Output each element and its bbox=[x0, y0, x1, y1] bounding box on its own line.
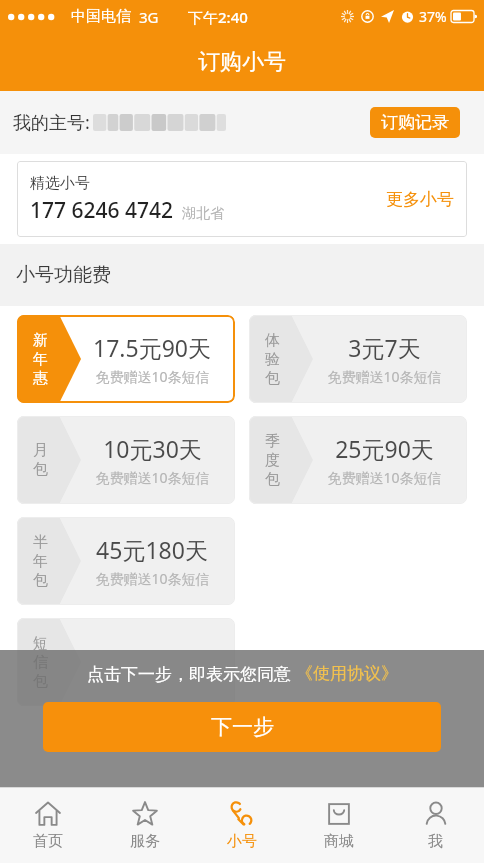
staticText: 小号功能费 bbox=[16, 263, 111, 287]
staticText: 免费赠送10条短信 bbox=[327, 367, 442, 386]
button[interactable]: 半 bbox=[17, 517, 235, 605]
staticText: 177 6246 4742 bbox=[30, 196, 174, 225]
staticText: 体 bbox=[265, 331, 280, 350]
staticText: 季 bbox=[265, 432, 280, 451]
button[interactable]: 首页 bbox=[0, 788, 96, 863]
staticText: 包 bbox=[33, 571, 48, 590]
staticText: 年 bbox=[33, 350, 48, 369]
button[interactable]: 体 bbox=[249, 315, 467, 403]
staticText: 包 bbox=[265, 369, 280, 388]
staticText: 下午2:40 bbox=[188, 7, 248, 27]
staticText: 17.5元90天 bbox=[93, 332, 211, 363]
button[interactable]: 小号 bbox=[193, 788, 290, 863]
staticText: 短 bbox=[33, 634, 48, 653]
staticText: 45元180天 bbox=[96, 534, 208, 565]
button[interactable]: 月 bbox=[17, 416, 235, 504]
staticText: 惠 bbox=[33, 369, 48, 388]
button[interactable]: 下一步 bbox=[43, 702, 441, 752]
staticText: 10元30天 bbox=[103, 433, 202, 464]
button[interactable]: 精选小号 bbox=[17, 161, 467, 237]
staticText: 年 bbox=[33, 552, 48, 571]
staticText: 免费赠送10条短信 bbox=[327, 468, 442, 487]
staticText: 验 bbox=[265, 350, 280, 369]
staticText: 包 bbox=[265, 470, 280, 489]
staticText: 中国电信 bbox=[71, 7, 131, 26]
staticText: 度 bbox=[265, 451, 280, 470]
staticText: 订购小号 bbox=[198, 48, 286, 76]
staticText: 点击下一步，即表示您同意 bbox=[87, 662, 296, 685]
staticText: 免费赠送10条短信 bbox=[95, 468, 210, 487]
button[interactable]: 我 bbox=[387, 788, 484, 863]
button[interactable]: 季 bbox=[249, 416, 467, 504]
button[interactable]: 商城 bbox=[290, 788, 387, 863]
staticText: 小号 bbox=[227, 832, 257, 851]
staticText: 包 bbox=[33, 672, 48, 691]
staticText: 订购记录 bbox=[381, 112, 449, 133]
button[interactable]: 服务 bbox=[96, 788, 193, 863]
staticText: 服务 bbox=[130, 832, 160, 851]
staticText: 商城 bbox=[324, 832, 354, 851]
staticText: 37% bbox=[419, 7, 447, 26]
staticText: 信 bbox=[33, 653, 48, 672]
staticText: 3元7天 bbox=[348, 332, 421, 363]
staticText: 半 bbox=[33, 533, 48, 552]
staticText: 我 bbox=[428, 832, 443, 851]
staticText: 包 bbox=[33, 460, 48, 479]
staticText: 免费赠送10条短信 bbox=[95, 367, 210, 386]
button[interactable]: 新 bbox=[17, 315, 235, 403]
staticText: 月 bbox=[33, 441, 48, 460]
staticText: 精选小号 bbox=[30, 174, 90, 193]
staticText: 3G bbox=[139, 7, 159, 27]
staticText: 免费赠送10条短信 bbox=[95, 569, 210, 588]
button[interactable]: 订购记录 bbox=[370, 107, 460, 138]
staticText: 新 bbox=[33, 331, 48, 350]
staticText: 湖北省 bbox=[182, 205, 224, 223]
button[interactable]: 更多小号 bbox=[386, 189, 454, 210]
button[interactable]: 短 bbox=[17, 618, 235, 706]
staticText: 首页 bbox=[33, 832, 63, 851]
button[interactable]: 《使用协议》 bbox=[296, 663, 398, 684]
staticText: 我的主号: bbox=[13, 110, 90, 135]
staticText: 下一步 bbox=[211, 714, 274, 740]
staticText: 25元90天 bbox=[335, 433, 434, 464]
